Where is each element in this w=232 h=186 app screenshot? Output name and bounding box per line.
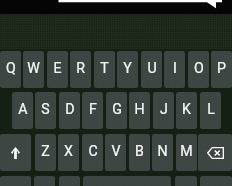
staticText: L — [207, 101, 215, 118]
button[interactable]: U — [141, 51, 162, 88]
staticText: Y — [123, 60, 132, 77]
staticText: H — [134, 101, 145, 118]
staticText: A — [18, 101, 28, 118]
staticText: Z — [41, 143, 50, 160]
button[interactable]: Period — [175, 176, 197, 186]
button[interactable]: P — [211, 51, 232, 88]
button[interactable]: D — [59, 92, 80, 129]
staticText: E — [53, 60, 62, 77]
button[interactable]: I — [164, 51, 185, 88]
staticText: J — [160, 101, 168, 118]
staticText: V — [111, 143, 121, 160]
staticText: R — [76, 60, 85, 77]
button[interactable]: Comma — [59, 176, 80, 186]
button[interactable]: M — [176, 134, 197, 171]
button[interactable]: F — [82, 92, 103, 129]
button[interactable]: H — [129, 92, 150, 129]
staticText: X — [64, 143, 73, 160]
staticText: D — [65, 101, 75, 118]
button[interactable]: C — [82, 134, 103, 171]
staticText: G — [112, 101, 122, 118]
button[interactable]: K — [176, 92, 197, 129]
button[interactable]: E — [47, 51, 68, 88]
staticText: I — [173, 60, 177, 77]
button[interactable]: Z — [35, 134, 56, 171]
staticText: S — [41, 101, 50, 118]
staticText: F — [89, 101, 97, 118]
button[interactable]: V — [105, 134, 126, 171]
staticText: T — [100, 60, 109, 77]
button[interactable]: G — [106, 92, 127, 129]
button[interactable]: S — [35, 92, 56, 129]
button[interactable]: N — [152, 134, 173, 171]
staticText: C — [88, 143, 98, 160]
button[interactable]: R — [70, 51, 91, 88]
button[interactable]: Y — [117, 51, 138, 88]
button[interactable]: Backspace — [198, 134, 232, 171]
button[interactable]: T — [94, 51, 115, 88]
button[interactable]: X — [58, 134, 79, 171]
button[interactable]: O — [188, 51, 209, 88]
button[interactable]: Symbols — [0, 176, 31, 186]
staticText: Q — [6, 60, 16, 77]
button[interactable]: W — [23, 51, 44, 88]
button[interactable]: B — [129, 134, 150, 171]
staticText: P — [217, 60, 226, 77]
staticText: M — [180, 143, 193, 160]
staticText: O — [194, 60, 204, 77]
button[interactable]: Emoji — [34, 176, 55, 186]
staticText: U — [147, 60, 157, 77]
button[interactable]: A — [12, 92, 33, 129]
button[interactable]: Shift — [0, 134, 31, 171]
staticText: W — [27, 60, 40, 77]
button[interactable]: Q — [0, 51, 21, 88]
staticText: K — [182, 101, 191, 118]
staticText: N — [157, 143, 168, 160]
staticText: B — [135, 143, 144, 160]
button[interactable]: Enter — [200, 176, 232, 186]
button[interactable]: L — [200, 92, 221, 129]
button[interactable]: J — [153, 92, 174, 129]
